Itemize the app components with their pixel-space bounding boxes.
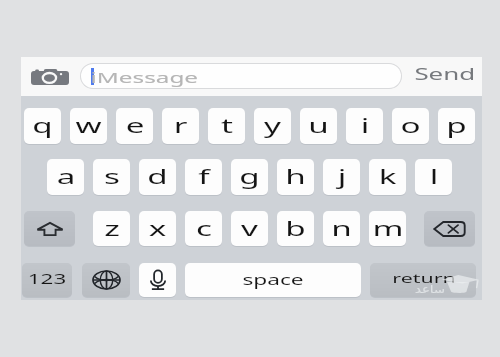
button[interactable]: Numbers	[22, 263, 72, 297]
button[interactable]: return	[370, 263, 476, 297]
staticText: k	[379, 162, 396, 190]
staticText: b	[285, 214, 306, 242]
staticText: n	[331, 214, 352, 242]
staticText: d	[147, 162, 168, 190]
button[interactable]: Shift	[24, 211, 75, 246]
button[interactable]: o	[392, 108, 429, 144]
staticText: u	[308, 111, 329, 139]
button[interactable]: r	[162, 108, 199, 144]
button[interactable]: t	[208, 108, 245, 144]
button[interactable]: a	[47, 159, 84, 195]
staticText: p	[446, 111, 467, 139]
staticText: j	[337, 162, 347, 190]
button[interactable]: k	[369, 159, 406, 195]
staticText: f	[197, 162, 210, 190]
staticText: a	[56, 162, 76, 190]
button[interactable]: i	[346, 108, 383, 144]
button[interactable]: n	[323, 211, 360, 246]
button[interactable]: q	[24, 108, 61, 144]
button[interactable]: u	[300, 108, 337, 144]
staticText: x	[149, 214, 166, 242]
button[interactable]: f	[185, 159, 222, 195]
button[interactable]: Change keyboard	[82, 263, 130, 297]
staticText: q	[32, 111, 53, 139]
button[interactable]: x	[139, 211, 176, 246]
button[interactable]: p	[438, 108, 475, 144]
staticText: return	[392, 269, 456, 287]
staticText: iMessage	[90, 67, 198, 87]
staticText: l	[429, 162, 439, 190]
button[interactable]: d	[139, 159, 176, 195]
button[interactable]: c	[185, 211, 222, 246]
staticText: 123	[28, 269, 66, 288]
staticText: m	[372, 214, 404, 242]
button[interactable]: s	[93, 159, 130, 195]
button[interactable]: w	[70, 108, 107, 144]
button[interactable]: Send	[414, 63, 452, 85]
button[interactable]: Dictation	[139, 263, 176, 297]
staticText: space	[242, 270, 304, 289]
button[interactable]: z	[93, 211, 130, 246]
staticText: z	[104, 214, 120, 242]
staticText: g	[239, 162, 260, 190]
staticText: e	[125, 111, 145, 139]
staticText: y	[264, 111, 281, 139]
button[interactable]: v	[231, 211, 268, 246]
staticText: s	[104, 162, 120, 190]
button[interactable]: y	[254, 108, 291, 144]
staticText: r	[173, 111, 188, 139]
staticText: t	[220, 111, 233, 139]
button[interactable]: l	[415, 159, 452, 195]
button[interactable]: m	[369, 211, 406, 246]
button[interactable]: Camera	[27, 61, 72, 92]
staticText: w	[75, 111, 102, 139]
staticText: v	[241, 214, 258, 242]
button[interactable]: g	[231, 159, 268, 195]
button[interactable]: h	[277, 159, 314, 195]
button[interactable]: space	[185, 263, 361, 297]
staticText: o	[400, 111, 421, 139]
button[interactable]: iMessage	[81, 64, 401, 88]
button[interactable]: b	[277, 211, 314, 246]
button[interactable]: Delete	[424, 211, 475, 246]
button[interactable]: j	[323, 159, 360, 195]
staticText: h	[285, 162, 306, 190]
staticText: c	[196, 214, 212, 242]
staticText: ساعد	[415, 283, 445, 296]
staticText: i	[360, 111, 370, 139]
button[interactable]: e	[116, 108, 153, 144]
